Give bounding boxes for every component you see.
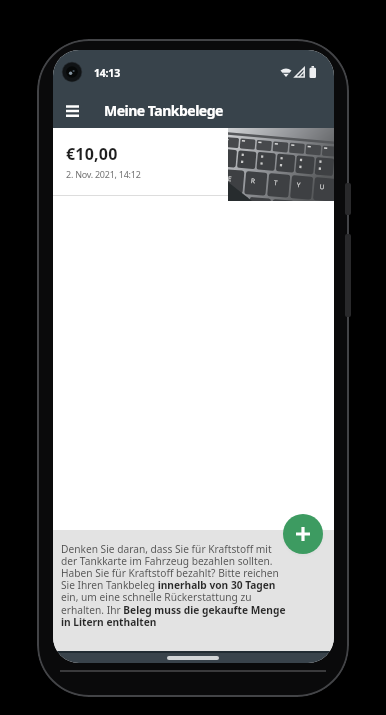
staticText: Haben Sie für Kraftstoff bezahlt? Bitte … <box>61 566 279 580</box>
staticText: erhalten. Ihr Beleg muss die gekaufte Me… <box>61 603 286 617</box>
staticText: in Litern enthalten <box>61 615 157 629</box>
staticText: 2. Nov. 2021, 14:12 <box>66 168 141 180</box>
button[interactable]: €10,00 <box>53 128 334 201</box>
button[interactable] <box>57 96 87 126</box>
staticText: der Tankkarte im Fahrzeug bezahlen sollt… <box>61 554 273 568</box>
staticText: €10,00 <box>66 143 118 165</box>
staticText: ein, um eine schnelle Rückerstattung zu <box>61 590 252 604</box>
staticText: 14:13 <box>94 66 120 80</box>
staticText: Denken Sie daran, dass Sie für Kraftstof… <box>61 542 272 556</box>
staticText: Meine Tankbelege <box>104 101 223 120</box>
staticText: Sie Ihren Tankbeleg innerhalb von 30 Tag… <box>61 578 276 592</box>
button[interactable] <box>283 514 323 554</box>
